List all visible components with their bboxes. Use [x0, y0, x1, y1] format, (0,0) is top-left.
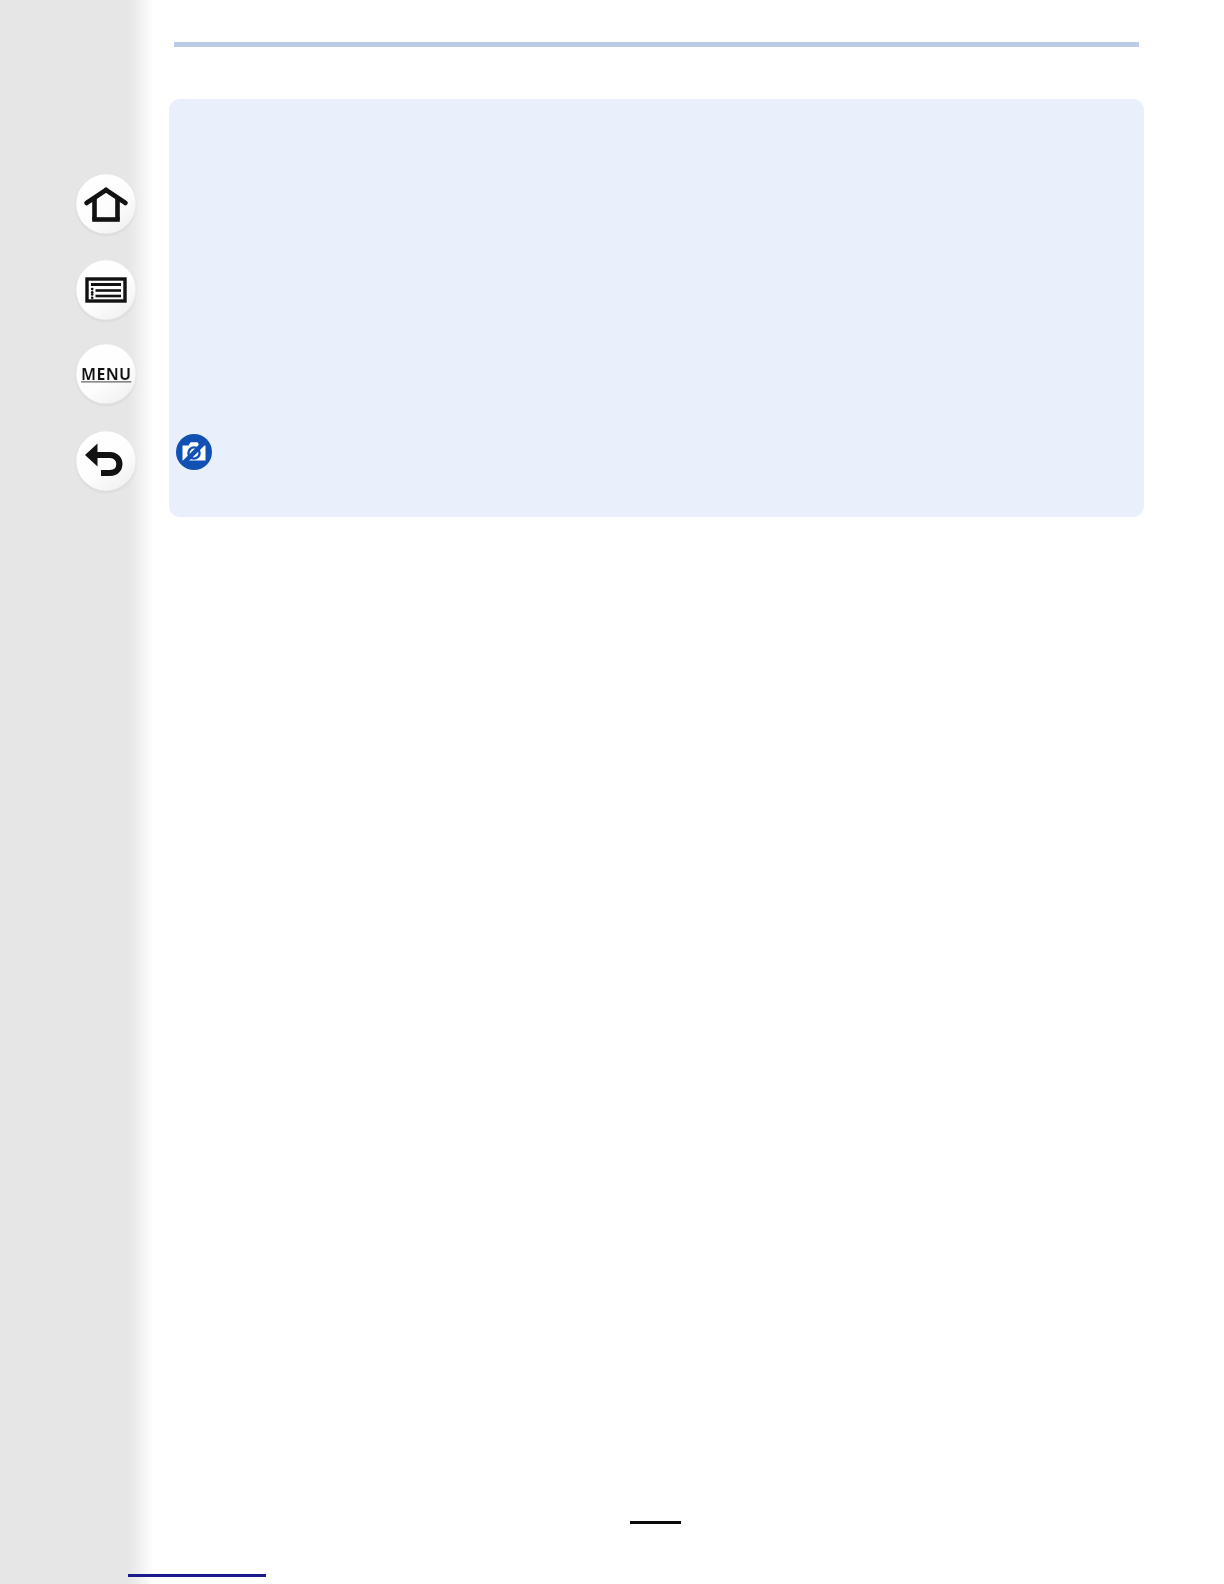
button[interactable]: Recording not available [174, 432, 214, 472]
button[interactable] [169, 99, 1144, 517]
button[interactable]: Display info [74, 258, 138, 322]
staticText: MENU [81, 363, 132, 385]
button[interactable]: Back [74, 429, 138, 493]
button[interactable]: Menu [74, 342, 138, 406]
button[interactable]: Home [74, 172, 138, 236]
